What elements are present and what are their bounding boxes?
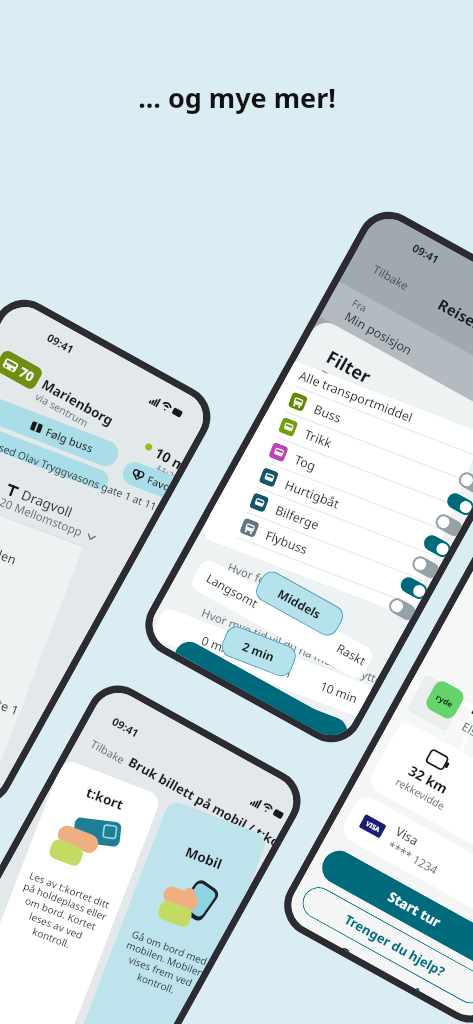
staticText: Tilbake bbox=[370, 262, 412, 294]
button[interactable]: 2 min bbox=[238, 634, 279, 669]
staticText: Filter bbox=[322, 345, 376, 390]
staticText: Min posisjon bbox=[341, 308, 415, 359]
button[interactable]: Middels bbox=[275, 585, 324, 622]
staticText: via sentrum bbox=[33, 389, 91, 430]
staticText: 09:41 bbox=[45, 330, 77, 357]
staticText: Flybuss bbox=[261, 521, 312, 564]
staticText: sed Olav Tryggvasons gate 1 at 11:28 bbox=[0, 418, 161, 534]
button[interactable]: Trikk bbox=[273, 389, 468, 528]
staticText: 20 Mellomstopp bbox=[0, 483, 87, 551]
staticText: Transportmidler bbox=[316, 367, 401, 423]
staticText: ... og mye mer! bbox=[138, 79, 336, 116]
staticText: ryde bbox=[434, 691, 455, 709]
staticText: Mobil bbox=[181, 838, 227, 878]
staticText: Elsparkesykkel bbox=[459, 718, 473, 772]
button[interactable]: Trenger du hjelp? bbox=[297, 881, 473, 1009]
button[interactable]: Kart bbox=[410, 984, 427, 994]
button[interactable]: Bruk bbox=[157, 622, 352, 744]
button[interactable]: Toggle bbox=[433, 511, 463, 538]
staticText: 09:41 bbox=[110, 713, 142, 741]
staticText: Reisesøk bbox=[435, 294, 473, 343]
staticText: 11:29 bbox=[153, 461, 177, 483]
staticText: Alle transportmiddel bbox=[294, 352, 418, 441]
button[interactable]: Flybuss bbox=[234, 489, 429, 629]
staticText: Dragvoll bbox=[17, 479, 78, 528]
button[interactable]: Hurtigbåt bbox=[253, 439, 448, 579]
staticText: Bruk bbox=[237, 683, 268, 703]
staticText: Følg buss bbox=[42, 418, 97, 462]
staticText: Hvor fort går du? bbox=[223, 548, 320, 619]
staticText: rons gate 1 bbox=[0, 672, 24, 728]
button[interactable] bbox=[175, 636, 350, 744]
staticText: Les av t:kortet ditt på holdeplass eller… bbox=[0, 856, 122, 971]
button[interactable]: Toggle bbox=[444, 490, 473, 517]
button[interactable]: t:kort bbox=[0, 747, 202, 1024]
staticText: 10 min bbox=[316, 673, 362, 711]
staticText: Raskt bbox=[334, 640, 369, 669]
button[interactable]: Toggle bbox=[409, 553, 440, 580]
button[interactable]: Favoritt bbox=[129, 460, 173, 498]
staticText: Ryde bbox=[467, 695, 473, 741]
button[interactable]: Mobil bbox=[14, 786, 275, 1024]
button[interactable]: Toggle bbox=[386, 595, 417, 622]
staticText: Buss bbox=[309, 397, 346, 430]
staticText: **** 1234 bbox=[385, 838, 441, 878]
button[interactable]: Tog bbox=[263, 414, 458, 554]
button[interactable]: Bilferge bbox=[244, 464, 439, 604]
staticText: 32 km bbox=[405, 761, 451, 798]
staticText: Langsomt bbox=[204, 570, 261, 611]
staticText: 10 min bbox=[151, 443, 185, 473]
staticText: Tog bbox=[290, 448, 321, 477]
staticText: Middels bbox=[275, 585, 324, 622]
staticText: Tilbake bbox=[88, 736, 128, 767]
staticText: VISA bbox=[364, 819, 382, 834]
button[interactable]: Toggle bbox=[398, 574, 428, 601]
staticText: 09:41 bbox=[410, 240, 442, 267]
button[interactable]: Buss bbox=[283, 363, 473, 503]
staticText: t:kort bbox=[81, 778, 129, 819]
button[interactable]: Toggle bbox=[421, 532, 452, 559]
staticText: Marienborg bbox=[38, 375, 117, 430]
staticText: 70 bbox=[16, 363, 38, 386]
button[interactable]: Reise bbox=[336, 943, 357, 956]
staticText: Fra bbox=[350, 296, 370, 315]
staticText: 5 min bbox=[256, 650, 296, 685]
button[interactable]: Toggle bbox=[456, 469, 473, 496]
staticText: 0 min bbox=[198, 628, 237, 662]
staticText: Trikk bbox=[300, 422, 337, 456]
staticText: Bruk billett på mobil / t:kort bbox=[125, 753, 279, 849]
staticText: Start tur bbox=[385, 887, 444, 931]
staticText: Hurtigbåt bbox=[280, 469, 344, 520]
staticText: Trenger du hjelp? bbox=[341, 910, 449, 981]
staticText: iden bbox=[0, 540, 21, 572]
staticText: 2 min bbox=[238, 634, 279, 669]
staticText: Hvor mye tid vil du ha mellom bytter? bbox=[197, 580, 382, 709]
button[interactable]: Start tur bbox=[316, 845, 473, 974]
button[interactable]: 70 bbox=[0, 354, 38, 386]
button[interactable]: Følg buss bbox=[0, 365, 125, 497]
staticText: Visa bbox=[392, 823, 422, 849]
staticText: Bilferge bbox=[271, 496, 324, 539]
staticText: Gå om bord med mobilen. Mobilen vises fr… bbox=[107, 915, 211, 1011]
staticText: Favoritt bbox=[144, 468, 173, 496]
staticText: rekkevidde bbox=[393, 774, 447, 813]
